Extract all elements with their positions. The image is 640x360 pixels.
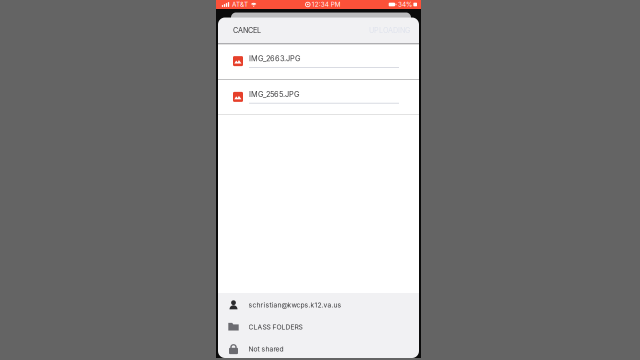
button[interactable]: IMG_2565.JPG (218, 80, 419, 115)
staticText: 12:34 PM (312, 1, 341, 8)
staticText: UPLOADING (369, 26, 410, 35)
button[interactable]: CLASS FOLDERS (218, 316, 419, 338)
button[interactable]: CANCEL (231, 22, 263, 39)
button[interactable]: UPLOADING (367, 22, 412, 39)
button[interactable]: schristian@kwcps.k12.va.us (218, 294, 419, 316)
staticText: CLASS FOLDERS (248, 323, 302, 331)
staticText: CANCEL (233, 26, 261, 35)
button[interactable]: IMG_2663.JPG (218, 44, 419, 79)
staticText: IMG_2565.JPG (249, 90, 299, 99)
staticText: AT&T (232, 1, 248, 8)
staticText: IMG_2663.JPG (249, 54, 300, 63)
staticText: 34% (398, 1, 412, 8)
button[interactable]: Not shared (218, 338, 419, 360)
staticText: schristian@kwcps.k12.va.us (248, 301, 341, 309)
staticText: Not shared (248, 345, 283, 353)
